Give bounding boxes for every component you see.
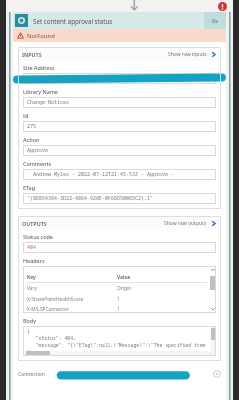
staticText: 1 xyxy=(117,306,207,313)
staticText: Andrew Myles - 2022-07-12T21:45:53Z - Ap… xyxy=(27,171,175,178)
staticText: "{8D854384-3D22-4864-928E-0F66D50065C2},… xyxy=(27,195,154,202)
staticText: Id xyxy=(23,112,29,119)
staticText: Connection xyxy=(18,371,45,378)
button[interactable]: Change Notices xyxy=(23,97,216,108)
staticText: 275 xyxy=(27,123,37,130)
staticText: OUTPUTS xyxy=(22,220,164,227)
other: More options xyxy=(213,370,221,378)
staticText: "status": 404, xyxy=(27,335,76,342)
staticText: Value xyxy=(117,274,207,281)
staticText: Library Name xyxy=(23,88,58,95)
button[interactable]: Error badge xyxy=(218,2,227,11)
staticText: Origin xyxy=(117,285,207,292)
staticText: Site Address xyxy=(23,64,55,71)
staticText: Show raw inputs xyxy=(168,51,207,58)
staticText: "message": "{\"ETag\":null,\"Message\":\… xyxy=(27,342,208,349)
staticText: } xyxy=(27,349,30,356)
button[interactable]: INPUTS xyxy=(22,47,217,61)
staticText: Action xyxy=(23,136,40,143)
staticText: Set content approval status xyxy=(33,17,204,25)
staticText: NotFound xyxy=(27,32,55,40)
staticText: Show raw outputs xyxy=(164,220,207,227)
button[interactable]: Approve xyxy=(23,145,216,156)
staticText: Key xyxy=(27,274,117,281)
staticText: Comments xyxy=(23,160,52,167)
other: Show raw inputs xyxy=(210,51,217,58)
staticText: 404 xyxy=(27,244,37,251)
staticText: Approve xyxy=(27,147,49,154)
button[interactable]: 404 xyxy=(23,242,216,253)
staticText: 0s xyxy=(212,17,218,25)
button[interactable]: OUTPUTS xyxy=(22,216,217,230)
staticText: Vary xyxy=(27,285,117,292)
staticText: Headers xyxy=(23,257,45,264)
button[interactable]: Connection xyxy=(18,367,221,381)
staticText: { xyxy=(27,328,30,335)
staticText: ETag xyxy=(23,184,36,191)
staticText: 1 xyxy=(117,296,207,303)
button[interactable] xyxy=(23,73,216,84)
button[interactable]: "{8D854384-3D22-4864-928E-0F66D50065C2},… xyxy=(23,193,216,204)
staticText: Status code xyxy=(23,233,53,240)
staticText: INPUTS xyxy=(22,51,168,58)
button[interactable]: 275 xyxy=(23,121,216,132)
button[interactable]: Andrew Myles - 2022-07-12T21:45:53Z - Ap… xyxy=(23,169,216,180)
staticText: Body xyxy=(23,317,37,324)
other: Show raw outputs xyxy=(210,220,217,227)
staticText: X-SharePointHealthScore xyxy=(27,296,117,303)
staticText: Change Notices xyxy=(27,99,70,106)
staticText: X-MS-SPConnector xyxy=(27,306,117,313)
button[interactable]: Set content approval status xyxy=(13,12,226,29)
